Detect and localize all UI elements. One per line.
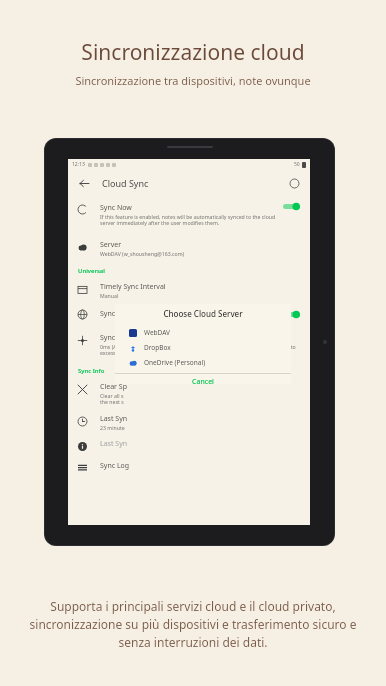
staticText: 12:13 [72,161,85,168]
button[interactable]: OneDrive (Personal) [115,355,291,370]
staticText: Manual [100,292,119,299]
staticText: Sync Info [78,367,105,375]
staticText: Universal [78,267,105,275]
button[interactable]: DropBox [115,340,291,355]
staticText: DropBox [144,343,171,352]
staticText: Sync Delay Between Files [100,333,183,343]
staticText: Sync Log [100,461,130,471]
staticText: 50 [294,161,300,168]
button[interactable]: Toggle [283,202,300,211]
button[interactable]: Help [286,175,302,191]
staticText: OneDrive (Personal) [144,358,206,367]
staticText: If this feature is enabled, notes will b… [100,213,277,227]
button[interactable]: Toggle [283,310,300,319]
staticText: Timely Sync Interval [100,282,166,292]
staticText: 23 minute [100,424,125,431]
staticText: Sincronizzazione tra dispositivi, note o… [75,73,311,88]
staticText: 0ms (Add throttling during file synchron… [100,343,300,357]
staticText: WebDAV (w_shousheng@163.com) [100,250,185,257]
staticText: Choose Cloud Server [115,308,291,319]
button[interactable]: Timely Sync Interval [68,278,310,303]
button[interactable]: Back [76,175,92,191]
button[interactable]: WebDAV [115,325,291,340]
button[interactable]: Cancel [115,377,291,384]
staticText: Last Syn [100,414,128,424]
staticText: Supporta i principali servizi cloud e il… [12,598,374,651]
button[interactable]: Last Syn [68,435,310,457]
staticText: Clear all s the next s [100,392,124,406]
staticText: Sync Only in WiFi Mode [100,309,177,319]
button[interactable]: Sync Log [68,457,310,479]
staticText: Sync Now [100,203,132,213]
staticText: Cloud Sync [102,177,149,189]
staticText: Server [100,240,122,250]
staticText: Last Syn [100,439,128,449]
button[interactable]: Sync Delay Between Files [68,329,310,361]
button[interactable]: Server [68,236,310,261]
staticText: Clear Sp [100,382,127,392]
button[interactable]: Clear Sp [68,378,310,410]
staticText: Sincronizzazione cloud [81,38,305,67]
staticText: WebDAV [144,328,170,337]
button[interactable]: Last Syn [68,410,310,435]
